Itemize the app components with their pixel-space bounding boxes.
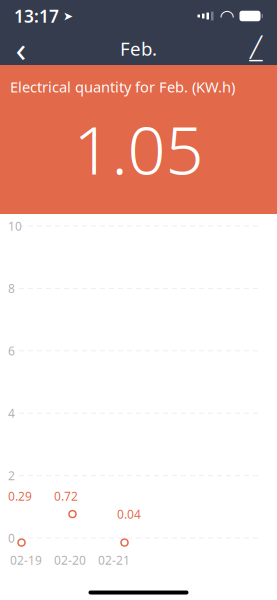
staticText: 8 <box>8 280 15 296</box>
staticText: Electrical quantity for Feb. (KW.h) <box>10 77 235 96</box>
staticText: 1.05 <box>73 104 203 193</box>
staticText: 6 <box>8 343 15 359</box>
staticText: 02-20 <box>54 552 86 568</box>
staticText: Feb. <box>120 36 157 61</box>
staticText: 02-19 <box>10 552 42 568</box>
staticText: 0.72 <box>54 488 78 504</box>
button[interactable]: Back <box>0 32 42 65</box>
staticText: ➤ <box>59 9 73 23</box>
staticText: 13:17 <box>14 4 59 27</box>
staticText: 2 <box>8 468 15 483</box>
staticText: 10 <box>8 218 22 234</box>
staticText: 0.04 <box>117 506 141 522</box>
staticText: 0.29 <box>8 488 32 504</box>
button[interactable]: Edit <box>235 32 277 65</box>
staticText: ╱ <box>250 36 262 58</box>
staticText: 02-21 <box>98 552 130 568</box>
staticText: ◠ <box>219 6 234 26</box>
staticText: ‹ <box>15 25 26 71</box>
staticText: 4 <box>8 405 15 421</box>
staticText: 0 <box>8 530 15 546</box>
